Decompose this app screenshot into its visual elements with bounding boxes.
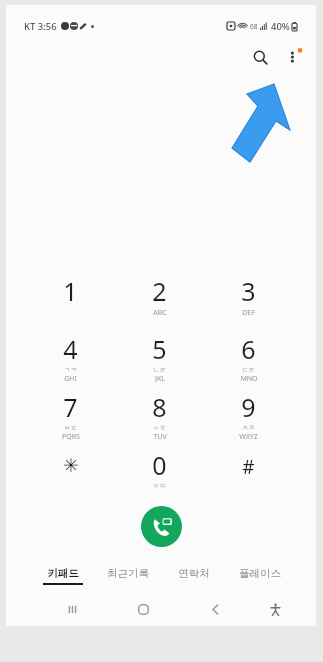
button[interactable]: 4 [26, 330, 115, 382]
staticText: ㅇㅁ [153, 482, 166, 490]
button[interactable]: 3 [204, 272, 293, 324]
button[interactable]: Back [200, 594, 230, 624]
button[interactable]: More options [279, 42, 309, 72]
button[interactable]: 0 [115, 446, 204, 490]
staticText: ㅂㅍ [64, 424, 77, 432]
staticText: 연락처 [178, 567, 210, 580]
staticText: PQRS [62, 432, 80, 440]
button[interactable]: # [204, 446, 293, 490]
staticText: 8 [152, 390, 167, 424]
staticText: # [242, 454, 255, 480]
button[interactable]: 키패드 [30, 567, 95, 585]
button[interactable]: ✳ [26, 446, 115, 490]
staticText: 최근기록 [107, 567, 149, 580]
staticText: ✳ [63, 454, 79, 476]
staticText: ABC [153, 308, 167, 318]
button[interactable]: 2 [115, 272, 204, 324]
button[interactable]: 1 [26, 272, 115, 324]
staticText: GHI [64, 374, 77, 382]
staticText: 1 [63, 274, 78, 308]
button[interactable]: Recents [57, 594, 87, 624]
staticText: MNO [240, 374, 258, 382]
staticText: ㄴㄹ [153, 366, 166, 374]
staticText: 7 [63, 390, 78, 424]
button[interactable]: 플레이스 [227, 567, 293, 585]
staticText: 6 [241, 332, 256, 366]
button[interactable]: 최근기록 [95, 567, 161, 585]
button[interactable]: Search [245, 42, 275, 72]
staticText: 0 [152, 448, 167, 482]
button[interactable]: Call [141, 506, 182, 547]
staticText: ㄷㅌ [242, 366, 255, 374]
button[interactable]: 6 [204, 330, 293, 382]
button[interactable]: 연락처 [161, 567, 227, 585]
staticText: ㅅㅎ [153, 424, 166, 432]
staticText: ㅈㅊ [242, 424, 255, 432]
staticText: 키패드 [47, 567, 79, 580]
button[interactable]: 7 [26, 388, 115, 440]
staticText: KT 3:56 [24, 20, 57, 33]
button[interactable]: 9 [204, 388, 293, 440]
staticText: 68 [250, 22, 258, 31]
staticText: ㄱㅋ [64, 366, 77, 374]
staticText: 5 [152, 332, 167, 366]
button[interactable]: 5 [115, 330, 204, 382]
staticText: 9 [241, 390, 256, 424]
button[interactable]: Home [128, 594, 158, 624]
button[interactable]: Accessibility [260, 594, 290, 624]
staticText: DEF [242, 308, 255, 318]
staticText: WXYZ [239, 432, 258, 440]
button[interactable]: 8 [115, 388, 204, 440]
staticText: 2 [152, 274, 167, 308]
staticText: 40% [271, 20, 290, 33]
staticText: TUV [153, 432, 167, 440]
staticText: 플레이스 [239, 567, 281, 580]
staticText: JKL [155, 374, 165, 382]
staticText: 3 [241, 274, 256, 308]
staticText: 4 [63, 332, 78, 366]
